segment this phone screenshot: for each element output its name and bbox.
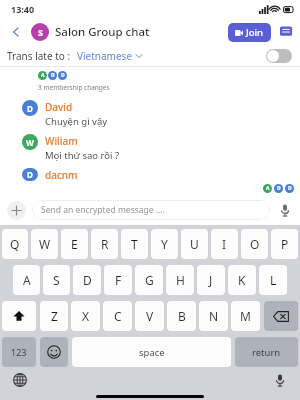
button[interactable]: O [241,229,268,259]
staticText: M [240,308,251,324]
button[interactable]: Chat [278,24,294,40]
button[interactable]: X [71,301,100,331]
button[interactable]: Dictate [271,371,289,389]
button[interactable]: Change keyboard [11,371,29,389]
staticText: J [209,272,213,288]
button[interactable]: R [91,229,118,259]
button[interactable]: D [0,97,300,131]
button[interactable]: Translate toggle [266,49,292,63]
staticText: B [178,308,186,324]
staticText: Vietnamese [77,49,133,63]
staticText: D [27,169,33,180]
button[interactable]: Send an encrypted message .... [32,200,270,220]
staticText: T [131,236,138,252]
staticText: F [115,272,122,288]
staticText: D [288,185,292,192]
staticText: N [209,308,219,324]
button[interactable]: U [181,229,208,259]
button[interactable]: Add attachment [7,201,26,220]
staticText: Mọi thứ sao rồi ? [45,149,120,162]
staticText: Salon Group chat [55,24,150,40]
staticText: H [176,272,185,288]
button[interactable]: F [104,265,132,295]
staticText: Send an encrypted message .... [41,204,165,216]
staticText: D [61,72,65,79]
button[interactable]: D [73,265,101,295]
staticText: A [41,72,45,79]
staticText: V [146,308,154,324]
button[interactable]: M [231,301,260,331]
staticText: 13:40 [11,3,35,15]
button[interactable]: G [135,265,163,295]
button[interactable]: B [167,301,196,331]
button[interactable]: Vietnamese [77,49,142,63]
staticText: P [281,236,289,252]
button[interactable]: H [166,265,194,295]
button[interactable]: Z [40,301,68,331]
staticText: A [266,185,270,192]
staticText: D [277,185,281,192]
staticText: K [238,272,246,288]
button[interactable]: C [103,301,132,331]
button[interactable]: V [135,301,164,331]
button[interactable]: space [72,337,231,367]
button[interactable]: D [0,165,300,184]
staticText: David [45,100,73,114]
staticText: S [38,26,43,38]
staticText: Chuyện gì vậy [45,115,108,128]
staticText: U [190,236,199,252]
button[interactable]: Q [2,229,28,259]
button[interactable]: Y [151,229,178,259]
staticText: 123 [11,346,27,358]
staticText: E [71,236,78,252]
button[interactable]: W [31,229,58,259]
staticText: A [23,272,31,288]
staticText: D [83,272,92,288]
button[interactable]: E [61,229,88,259]
staticText: O [250,236,260,252]
staticText: Join [246,26,264,39]
button[interactable]: N [199,301,228,331]
staticText: Y [161,236,168,252]
button[interactable]: Emoji [40,337,68,367]
staticText: return [252,346,281,359]
staticText: G [145,272,154,288]
staticText: R [101,236,109,252]
staticText: W [39,236,51,252]
staticText: I [222,236,227,252]
button[interactable]: T [121,229,148,259]
staticText: Q [10,236,20,252]
button[interactable]: P [271,229,298,259]
button[interactable]: Backspace [264,301,298,331]
button[interactable]: J [197,265,225,295]
staticText: X [82,308,90,324]
button[interactable]: Join [228,23,271,42]
staticText: Z [51,308,58,324]
button[interactable]: S [43,265,70,295]
staticText: D [51,72,55,79]
button[interactable]: W [0,131,300,165]
staticText: Wiliam [45,134,78,148]
button[interactable]: return [235,337,298,367]
staticText: 3 membership changes [38,83,110,92]
button[interactable]: 123 [2,337,36,367]
button[interactable]: A [13,265,40,295]
button[interactable]: I [211,229,238,259]
button[interactable]: K [228,265,256,295]
button[interactable]: L [259,265,287,295]
button[interactable]: Voice message [277,202,293,218]
button[interactable]: Back [7,23,25,41]
staticText: S [53,272,60,288]
staticText: dacnm [45,168,78,181]
staticText: Trans late to : [7,49,71,63]
button[interactable]: Shift [2,301,36,331]
staticText: C [114,308,122,324]
staticText: space [139,346,165,359]
staticText: D [27,103,33,114]
staticText: L [270,272,277,288]
staticText: W [26,137,34,148]
